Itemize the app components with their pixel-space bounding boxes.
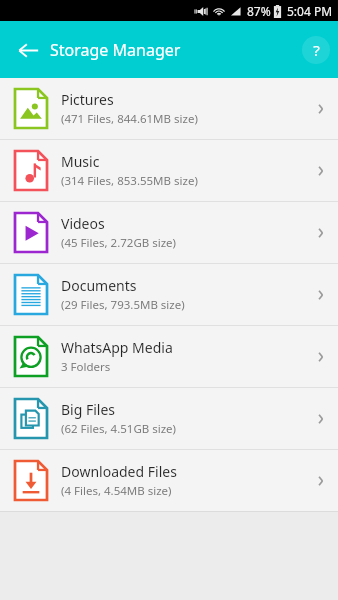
staticText: (4 Files, 4.54MB size)	[61, 483, 172, 499]
staticText: Storage Manager	[50, 39, 181, 61]
staticText: 5:04 PM	[287, 3, 333, 19]
staticText: (314 Files, 853.55MB size)	[61, 173, 198, 189]
staticText: 87%	[247, 3, 271, 19]
button[interactable]: Music	[0, 140, 338, 201]
button[interactable]: Downloaded Files	[0, 450, 338, 511]
button[interactable]: Help	[302, 36, 330, 64]
staticText: 3 Folders	[61, 359, 111, 375]
button[interactable]: Videos	[0, 202, 338, 263]
staticText: Videos	[61, 214, 105, 233]
button[interactable]: Big Files	[0, 388, 338, 449]
button[interactable]: Back	[10, 32, 46, 68]
button[interactable]: Pictures	[0, 78, 338, 139]
staticText: (471 Files, 844.61MB size)	[61, 111, 198, 127]
staticText: Music	[61, 152, 100, 171]
button[interactable]: Documents	[0, 264, 338, 325]
staticText: (29 Files, 793.5MB size)	[61, 297, 185, 313]
staticText: Downloaded Files	[61, 462, 177, 481]
staticText: WhatsApp Media	[61, 338, 173, 357]
staticText: Big Files	[61, 400, 116, 419]
button[interactable]: WhatsApp Media	[0, 326, 338, 387]
staticText: Pictures	[61, 90, 114, 109]
staticText: Documents	[61, 276, 137, 295]
staticText: ?	[313, 40, 320, 60]
staticText: (62 Files, 4.51GB size)	[61, 421, 177, 437]
staticText: (45 Files, 2.72GB size)	[61, 235, 177, 251]
